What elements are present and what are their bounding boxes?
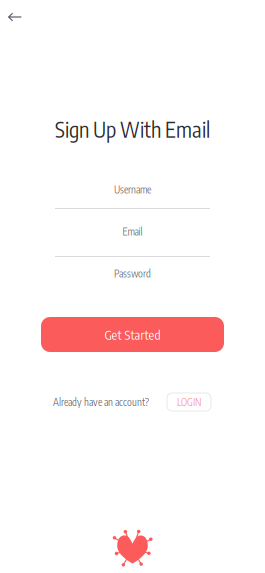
staticText: Email: [122, 225, 142, 238]
staticText: Password: [114, 267, 151, 280]
staticText: Sign Up With Email: [55, 116, 210, 142]
staticText: Username: [114, 183, 151, 196]
button[interactable]: LOGIN: [167, 393, 211, 411]
button[interactable]: Username: [55, 184, 210, 209]
staticText: LOGIN: [177, 396, 201, 408]
button[interactable]: Password: [114, 268, 151, 279]
button[interactable]: Back: [0, 1, 32, 32]
button[interactable]: Email: [55, 226, 210, 257]
staticText: Get Started: [104, 327, 160, 342]
staticText: Already have an account?: [53, 396, 149, 408]
button[interactable]: Get Started: [41, 317, 224, 352]
